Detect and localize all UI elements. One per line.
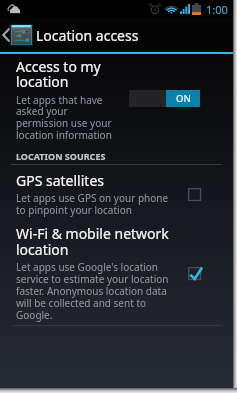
staticText: Wi-Fi & mobile network location (16, 224, 176, 259)
staticText: ON (176, 92, 191, 105)
staticText: Let apps that have asked your permission… (16, 93, 116, 142)
staticText: LOCATION SOURCES (16, 150, 106, 162)
button[interactable]: GPS satellites (0, 168, 233, 220)
staticText: GPS satellites (16, 171, 104, 190)
staticText: Access to my location (16, 57, 116, 91)
button[interactable]: Checked (188, 267, 208, 287)
button[interactable]: Navigate up (0, 18, 233, 52)
button[interactable]: Access to my location (0, 54, 233, 142)
staticText: Let apps use Google's location service t… (16, 260, 176, 322)
staticText: Location access (36, 26, 139, 45)
staticText: Let apps use GPS on your phone to pinpoi… (16, 191, 176, 217)
button[interactable]: Not checked (188, 188, 208, 208)
other: Navigate up (3, 29, 9, 41)
staticText: 1:00 (206, 2, 228, 17)
button[interactable]: ON (129, 90, 200, 107)
button[interactable]: Wi-Fi & mobile network location (0, 221, 233, 326)
